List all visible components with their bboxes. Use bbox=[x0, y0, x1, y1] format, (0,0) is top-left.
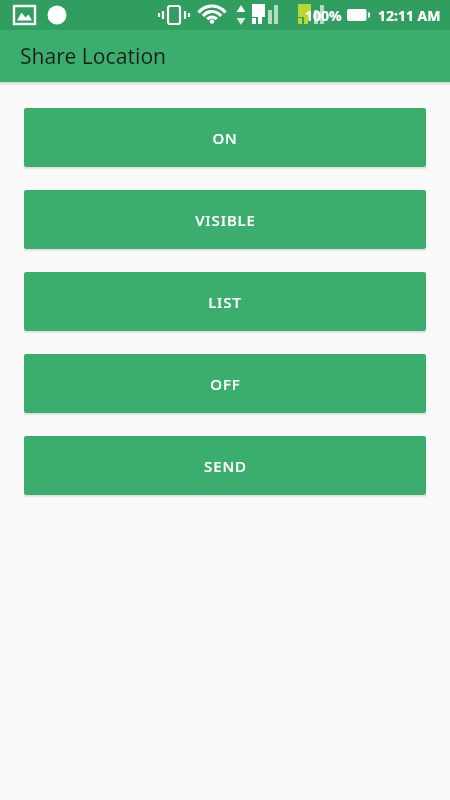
staticText: OFF bbox=[210, 374, 241, 394]
staticText: VISIBLE bbox=[195, 210, 256, 230]
button[interactable]: LIST bbox=[24, 272, 426, 331]
staticText: SEND bbox=[204, 456, 247, 476]
button[interactable]: VISIBLE bbox=[24, 190, 426, 249]
staticText: 12:11 AM bbox=[378, 6, 441, 25]
staticText: ON bbox=[212, 128, 238, 148]
staticText: 100% bbox=[305, 6, 342, 25]
button[interactable]: SEND bbox=[24, 436, 426, 495]
button[interactable]: OFF bbox=[24, 354, 426, 413]
staticText: Share Location bbox=[20, 42, 167, 71]
button[interactable]: ON bbox=[24, 108, 426, 167]
staticText: LIST bbox=[208, 292, 242, 312]
